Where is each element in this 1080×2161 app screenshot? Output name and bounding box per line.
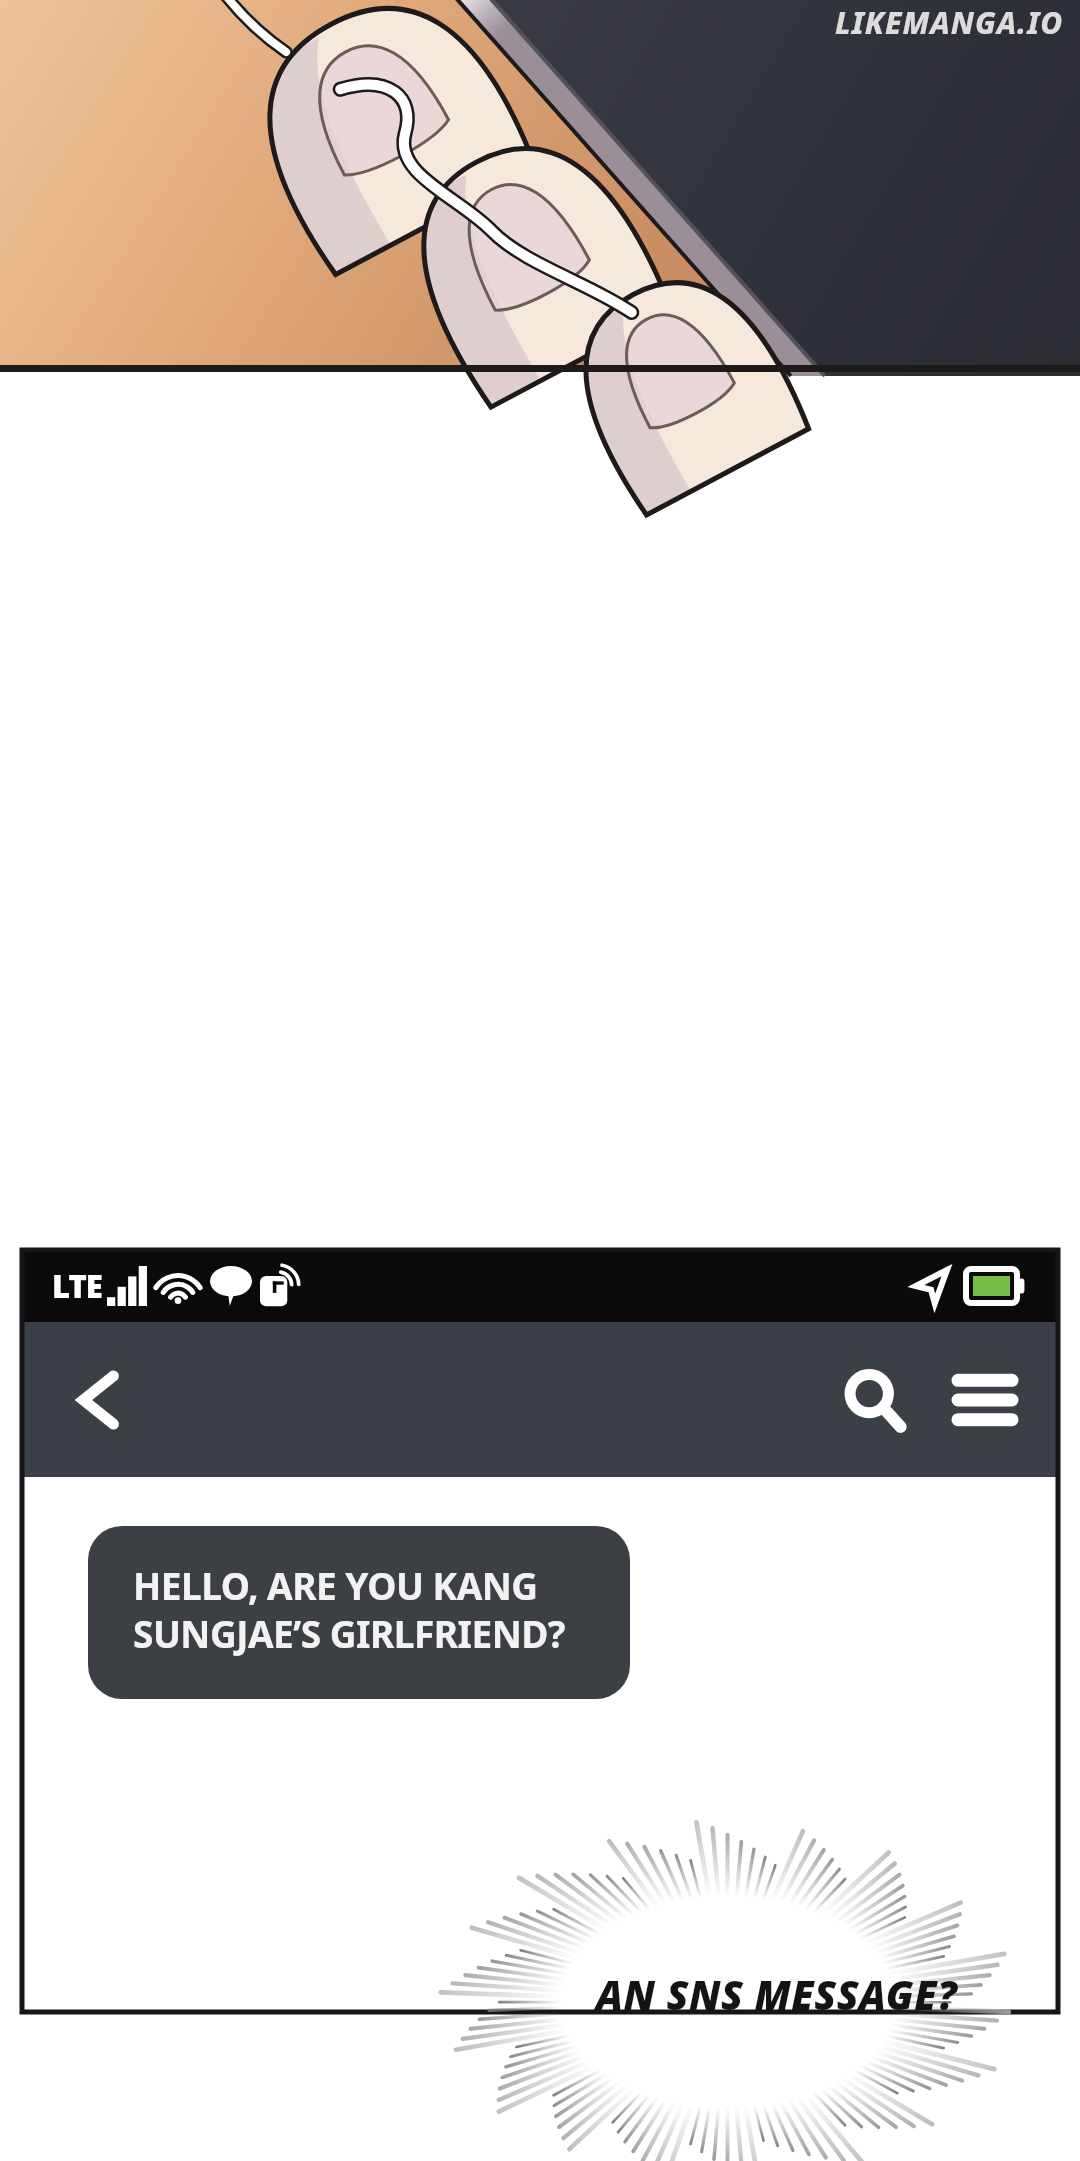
staticText: HELLO, ARE YOU KANG SUNGJAE’S GIRLFRIEND… xyxy=(133,1560,565,1659)
button[interactable]: HELLO, ARE YOU KANG SUNGJAE’S GIRLFRIEND… xyxy=(88,1526,630,1699)
button[interactable]: Search xyxy=(820,1345,930,1455)
staticText: AN SNS MESSAGE? xyxy=(596,1967,958,2021)
button[interactable]: Back xyxy=(44,1345,154,1455)
staticText: LTE xyxy=(52,1265,102,1307)
button[interactable]: Menu xyxy=(930,1345,1040,1455)
staticText: LIKEMANGA.IO xyxy=(835,2,1064,43)
